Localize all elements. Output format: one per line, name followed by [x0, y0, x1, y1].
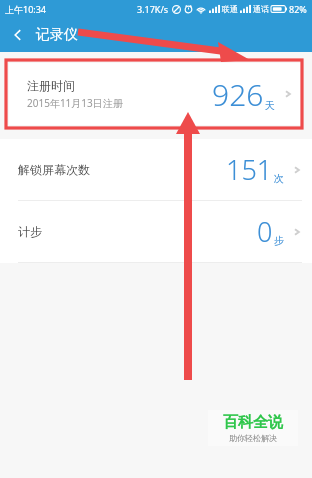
button[interactable]: 解锁屏幕次数: [0, 139, 312, 200]
button[interactable]: 注册时间: [9, 63, 303, 125]
staticText: 926: [212, 74, 264, 115]
staticText: 百科全说: [223, 413, 283, 432]
staticText: 记录仪: [36, 26, 78, 44]
staticText: 151: [226, 151, 273, 188]
staticText: 次: [274, 172, 284, 185]
button[interactable]: Back: [0, 18, 36, 52]
staticText: 联通: [222, 4, 238, 14]
staticText: 步: [274, 234, 284, 247]
staticText: 上午10:34: [5, 3, 47, 15]
staticText: 助你轻松解决: [229, 433, 277, 443]
button[interactable]: 计步: [0, 201, 312, 262]
staticText: 解锁屏幕次数: [18, 162, 90, 177]
staticText: 通话: [253, 4, 269, 14]
staticText: 0: [257, 213, 273, 250]
staticText: 82%: [289, 3, 307, 15]
staticText: 2015年11月13日注册: [27, 96, 123, 110]
staticText: 3.17K/s: [137, 3, 169, 15]
staticText: 天: [265, 99, 275, 112]
staticText: 注册时间: [27, 78, 75, 93]
staticText: 计步: [18, 224, 42, 239]
